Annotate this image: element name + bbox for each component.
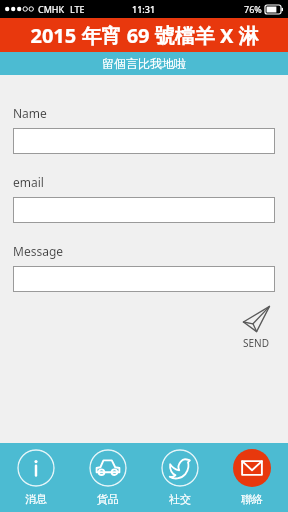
staticText: 11:31 [132, 3, 156, 15]
staticText: email [13, 174, 44, 190]
button[interactable]: Social [144, 443, 216, 512]
button[interactable]: SEND [237, 302, 275, 352]
button[interactable]: Contact [216, 443, 288, 512]
staticText: 消息 [25, 492, 47, 506]
staticText: Message [13, 243, 64, 259]
button[interactable] [13, 128, 275, 154]
staticText: Name [13, 105, 47, 121]
staticText: 76% [244, 3, 262, 15]
button[interactable]: Products [72, 443, 144, 512]
staticText: 聯絡 [241, 492, 263, 506]
staticText: CMHK [38, 3, 65, 15]
staticText: 留個言比我地啦 [102, 56, 186, 71]
staticText: 貨品 [97, 492, 119, 506]
button[interactable] [13, 266, 275, 292]
staticText: 社交 [169, 492, 191, 506]
staticText: SEND [243, 336, 269, 350]
button[interactable] [13, 197, 275, 223]
staticText: 2015 年宵 69 號檔羊 X 淋 [30, 22, 259, 49]
staticText: LTE [70, 3, 85, 15]
button[interactable]: Info [0, 443, 72, 512]
